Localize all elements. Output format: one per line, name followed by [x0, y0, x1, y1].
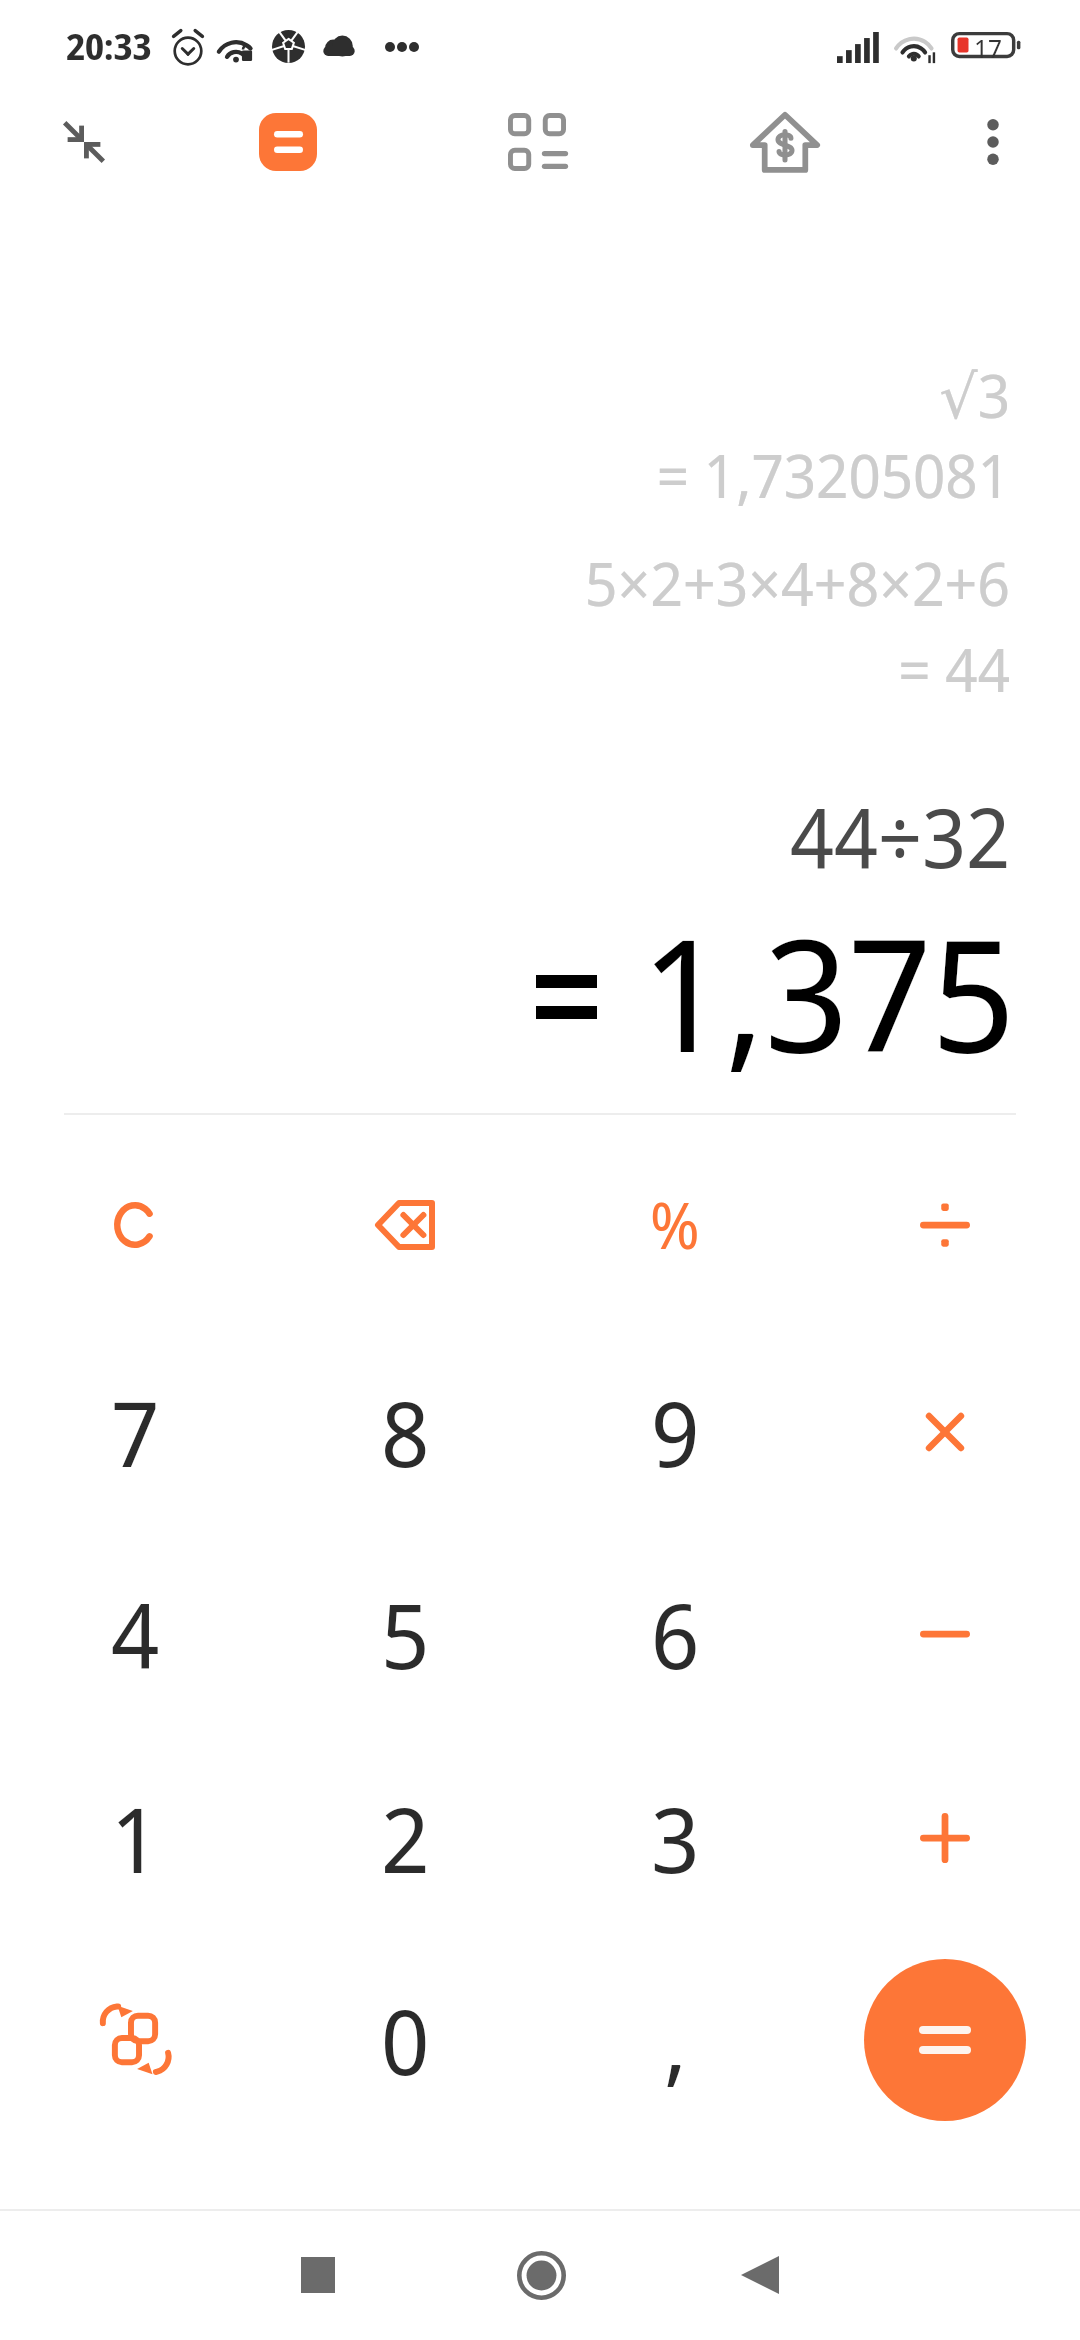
- button[interactable]: 2: [270, 1736, 540, 1940]
- staticText: 3: [651, 1777, 700, 1900]
- button[interactable]: Back: [700, 2215, 820, 2335]
- button[interactable]: Multiply: [810, 1330, 1080, 1534]
- button[interactable]: Convert: [0, 1938, 270, 2142]
- staticText: 1: [111, 1777, 160, 1900]
- staticText: 2: [381, 1777, 430, 1900]
- button[interactable]: Collapse: [34, 92, 134, 192]
- button[interactable]: %: [540, 1123, 810, 1327]
- staticText: 7: [111, 1371, 160, 1494]
- staticText: 44÷32: [790, 780, 1010, 892]
- button[interactable]: 0: [270, 1938, 540, 2142]
- button[interactable]: Calculator: [238, 92, 338, 192]
- button[interactable]: Home: [481, 2215, 601, 2335]
- staticText: %: [650, 1182, 700, 1268]
- staticText: 5: [381, 1573, 430, 1696]
- button[interactable]: 1: [0, 1736, 270, 1940]
- button[interactable]: More options: [943, 92, 1043, 192]
- button[interactable]: Divide: [810, 1123, 1080, 1327]
- staticText: = 1,73205081: [656, 434, 1010, 516]
- staticText: 1,375: [641, 886, 1015, 1098]
- staticText: 6: [651, 1573, 700, 1696]
- button[interactable]: 4: [0, 1532, 270, 1736]
- button[interactable]: Plus: [810, 1736, 1080, 1940]
- staticText: 8: [381, 1371, 430, 1494]
- button[interactable]: Minus: [810, 1532, 1080, 1736]
- staticText: = 44: [898, 628, 1010, 710]
- staticText: 4: [111, 1573, 160, 1696]
- staticText: ,: [664, 1979, 687, 2102]
- button[interactable]: Clear: [0, 1123, 270, 1327]
- button[interactable]: ,: [540, 1938, 810, 2142]
- staticText: 17: [974, 30, 1002, 65]
- button[interactable]: 7: [0, 1330, 270, 1534]
- staticText: √3: [939, 354, 1010, 436]
- button[interactable]: 6: [540, 1532, 810, 1736]
- staticText: 20:33: [66, 23, 152, 71]
- button[interactable]: 5: [270, 1532, 540, 1736]
- button[interactable]: Mortgage: [735, 92, 835, 192]
- staticText: 0: [381, 1979, 430, 2102]
- button[interactable]: Equals: [864, 1959, 1026, 2121]
- button[interactable]: Backspace: [270, 1123, 540, 1327]
- button[interactable]: 9: [540, 1330, 810, 1534]
- button[interactable]: 3: [540, 1736, 810, 1940]
- staticText: 9: [651, 1371, 700, 1494]
- button[interactable]: Recents: [258, 2215, 378, 2335]
- staticText: 5×2+3×4+8×2+6: [584, 541, 1010, 624]
- button[interactable]: Unit converter: [487, 92, 587, 192]
- button[interactable]: 8: [270, 1330, 540, 1534]
